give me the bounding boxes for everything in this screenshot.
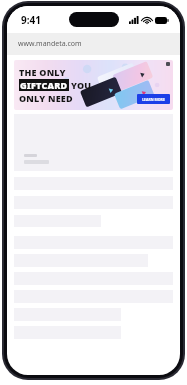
staticText: GIFTCARD bbox=[20, 79, 68, 91]
staticText: 9:41 bbox=[21, 13, 41, 27]
staticText: THE ONLY bbox=[19, 66, 66, 78]
staticText: www.mandeta.com bbox=[18, 39, 82, 49]
staticText: ONLY NEED bbox=[19, 92, 73, 104]
button[interactable]: Close ad bbox=[166, 62, 170, 66]
button[interactable]: LEARN MORE bbox=[137, 94, 170, 104]
button[interactable]: www.mandeta.com bbox=[7, 33, 180, 55]
staticText: YOU bbox=[71, 79, 92, 91]
staticText: LEARN MORE bbox=[142, 97, 165, 102]
